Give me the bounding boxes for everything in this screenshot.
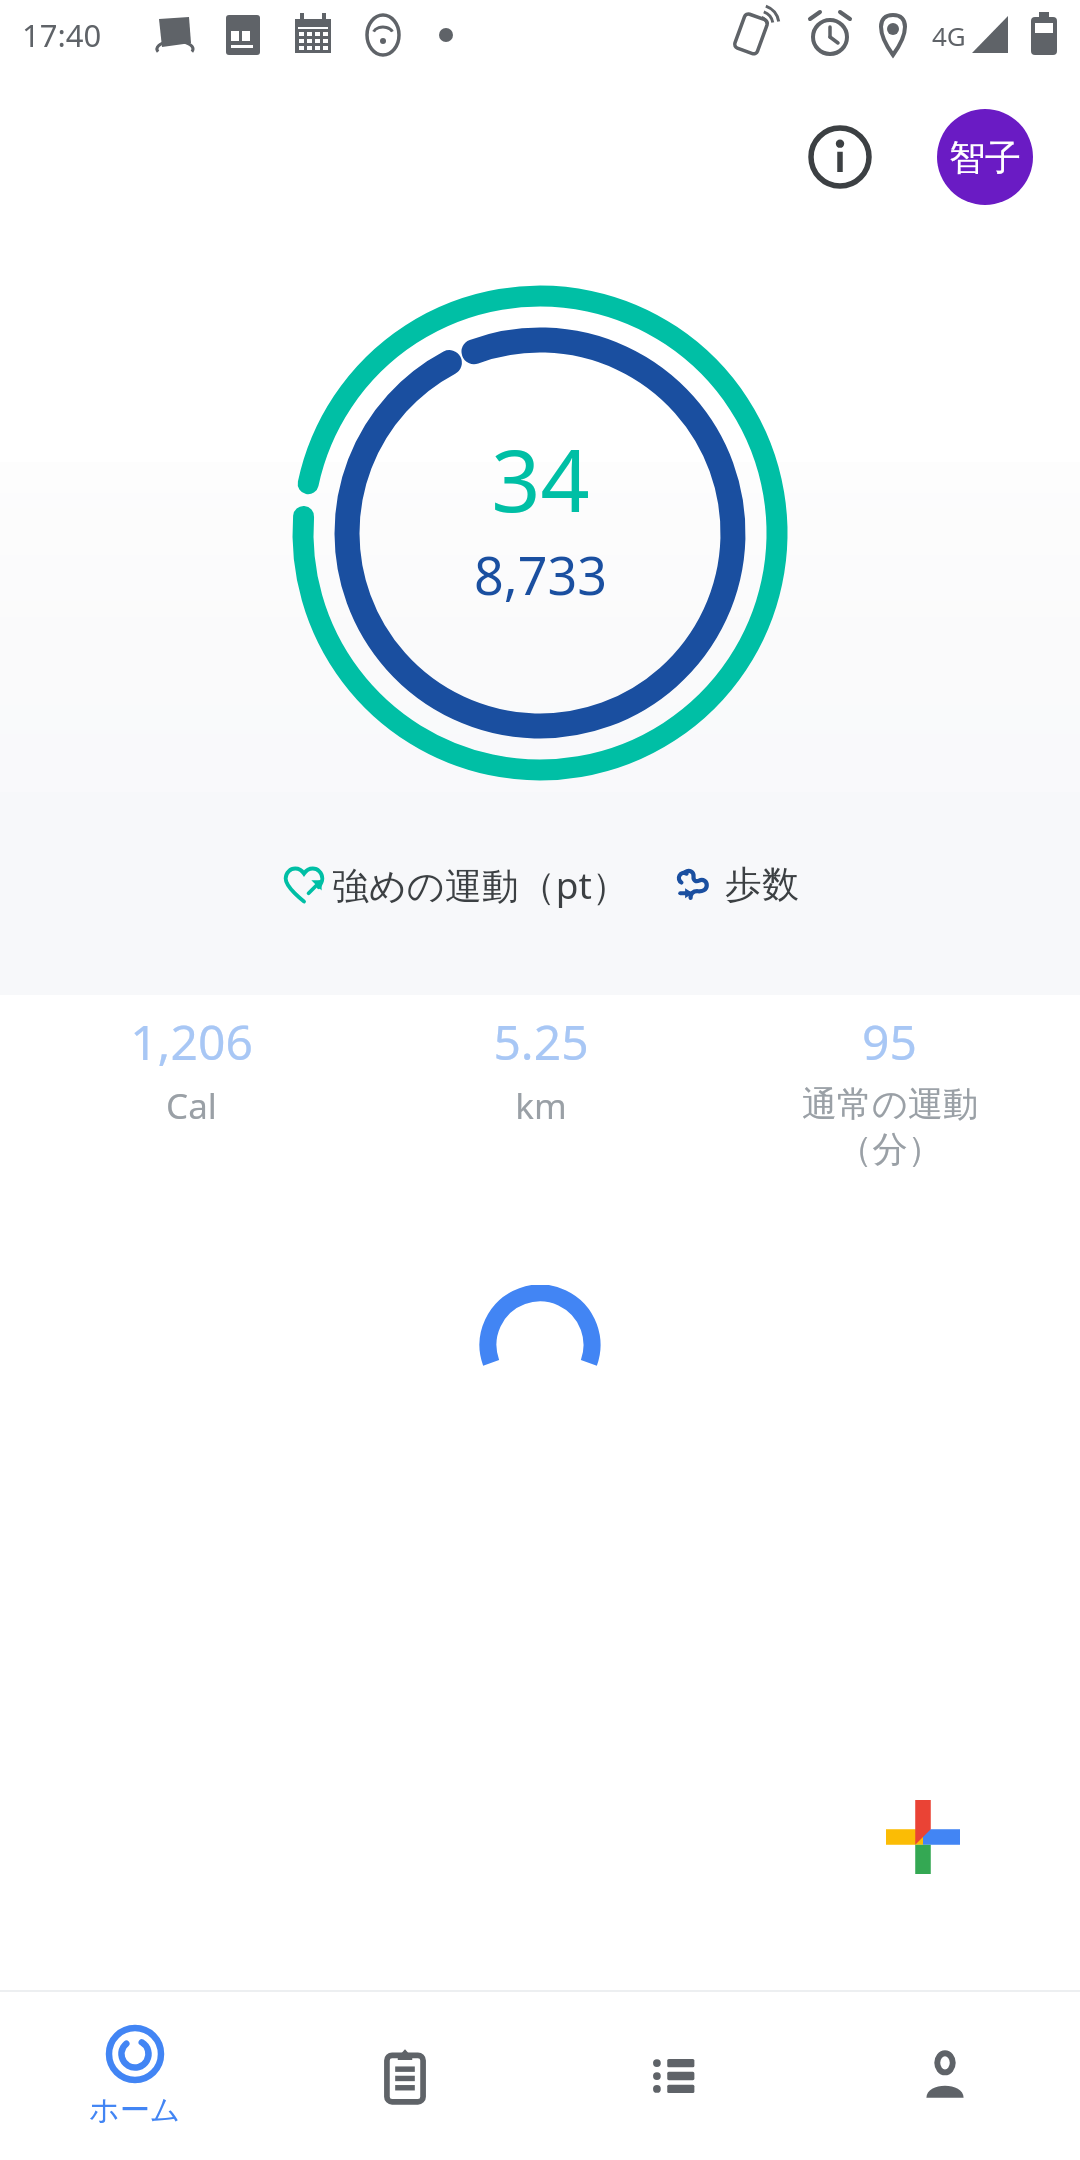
staticText: 17:40 — [22, 14, 102, 56]
staticText: 4G — [932, 18, 966, 53]
staticText: Cal — [166, 1082, 217, 1130]
staticText: 95 — [862, 1009, 917, 1074]
button[interactable]: 1,206 — [16, 1005, 366, 1134]
button[interactable]: 95 — [715, 1005, 1064, 1176]
button[interactable]: Profile — [810, 1992, 1080, 2160]
staticText: 34 — [491, 420, 590, 537]
staticText: 強めの運動（pt） — [332, 859, 629, 910]
button[interactable]: 歩数 — [669, 857, 803, 912]
staticText: ホーム — [89, 2091, 181, 2129]
staticText: 通常の運動 （分） — [802, 1082, 978, 1172]
button[interactable]: ホーム — [0, 1992, 270, 2160]
staticText: 智子 — [949, 135, 1021, 180]
button[interactable]: 5.25 — [366, 1005, 715, 1134]
staticText: 1,206 — [130, 1009, 253, 1074]
staticText: 5.25 — [493, 1009, 589, 1074]
button[interactable]: 強めの運動（pt） — [278, 855, 633, 914]
button[interactable]: Account 智子 — [937, 109, 1033, 205]
button[interactable]: Add activity — [838, 1752, 1008, 1922]
staticText: 8,733 — [474, 539, 607, 610]
staticText: 歩数 — [725, 861, 799, 908]
button[interactable]: Journal — [270, 1992, 540, 2160]
staticText: km — [515, 1082, 567, 1130]
button[interactable]: Browse — [540, 1992, 810, 2160]
button[interactable]: Information — [792, 109, 888, 205]
